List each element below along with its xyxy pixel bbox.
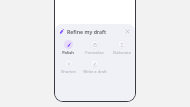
button[interactable]: Elaborate <box>108 39 135 56</box>
staticText: Polish <box>62 50 74 55</box>
button[interactable]: Shorten <box>55 58 81 75</box>
button[interactable]: Formalize <box>81 39 108 56</box>
button[interactable]: Write a draft <box>81 58 108 75</box>
button[interactable]: Polish <box>55 39 81 56</box>
staticText: Refine my draft <box>67 28 107 35</box>
staticText: Shorten <box>61 69 76 74</box>
staticText: Formalize <box>85 50 104 55</box>
staticText: Write a draft <box>83 69 107 74</box>
staticText: Elaborate <box>113 50 131 55</box>
button[interactable]: Close <box>124 28 131 35</box>
